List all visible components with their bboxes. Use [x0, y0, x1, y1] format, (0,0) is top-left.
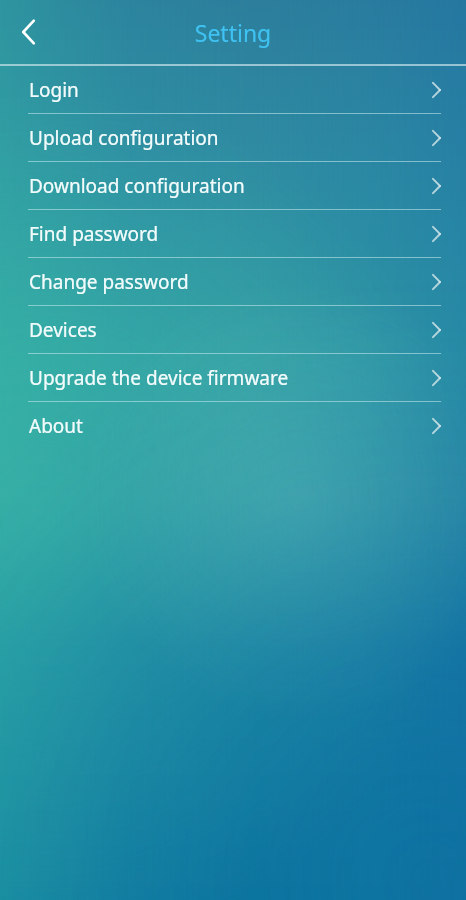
button[interactable]: Change password	[0, 258, 466, 306]
button[interactable]: Back	[0, 0, 62, 64]
button[interactable]: Upgrade the device firmware	[0, 354, 466, 402]
button[interactable]: Devices	[0, 306, 466, 354]
staticText: About	[29, 413, 431, 439]
staticText: Setting	[0, 17, 466, 48]
staticText: Login	[29, 77, 431, 103]
staticText: Upload configuration	[29, 125, 431, 151]
button[interactable]: Find password	[0, 210, 466, 258]
button[interactable]: Download configuration	[0, 162, 466, 210]
staticText: Find password	[29, 221, 431, 247]
staticText: Download configuration	[29, 173, 431, 199]
staticText: Upgrade the device firmware	[29, 365, 431, 391]
staticText: Devices	[29, 317, 431, 343]
button[interactable]: About	[0, 402, 466, 450]
button[interactable]: Login	[0, 66, 466, 114]
staticText: Change password	[29, 269, 431, 295]
button[interactable]: Upload configuration	[0, 114, 466, 162]
